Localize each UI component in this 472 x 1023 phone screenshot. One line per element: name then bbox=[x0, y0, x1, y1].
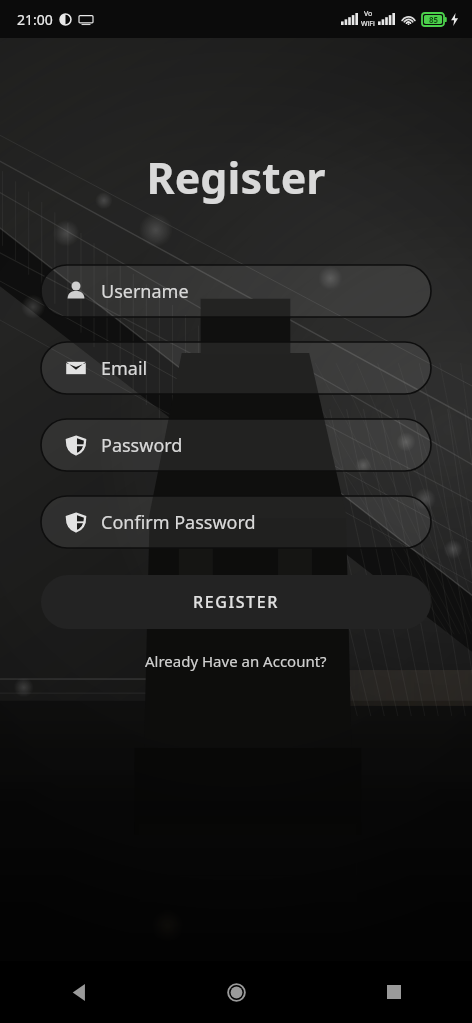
staticText: Username bbox=[101, 279, 189, 304]
button[interactable]: Password bbox=[41, 419, 431, 471]
staticText: Vo bbox=[364, 9, 373, 19]
button[interactable]: Back bbox=[0, 961, 158, 1023]
staticText: Already Have an Account? bbox=[145, 651, 327, 671]
staticText: 85 bbox=[429, 14, 439, 25]
button[interactable]: Already Have an Account? bbox=[41, 645, 431, 677]
staticText: Password bbox=[101, 433, 183, 458]
button[interactable]: Home bbox=[158, 961, 315, 1023]
staticText: WiFi bbox=[361, 19, 375, 29]
staticText: Confirm Password bbox=[101, 510, 256, 535]
button[interactable]: REGISTER bbox=[41, 575, 431, 629]
staticText: 21:00 bbox=[17, 10, 53, 29]
staticText: REGISTER bbox=[193, 591, 279, 613]
staticText: Register bbox=[41, 148, 431, 207]
button[interactable]: Recent apps bbox=[315, 961, 472, 1023]
staticText: Email bbox=[101, 356, 148, 381]
button[interactable]: Username bbox=[41, 265, 431, 317]
button[interactable]: Email bbox=[41, 342, 431, 394]
button[interactable]: Confirm Password bbox=[41, 496, 431, 548]
